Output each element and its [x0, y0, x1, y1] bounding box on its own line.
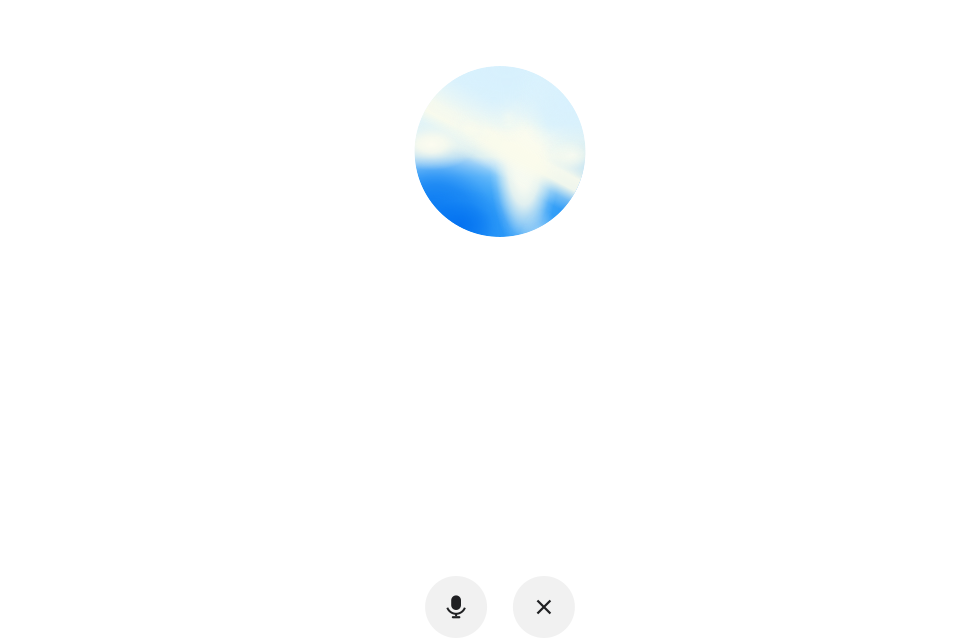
button[interactable]: Voice input: [425, 576, 487, 638]
button[interactable]: Close: [513, 576, 575, 638]
